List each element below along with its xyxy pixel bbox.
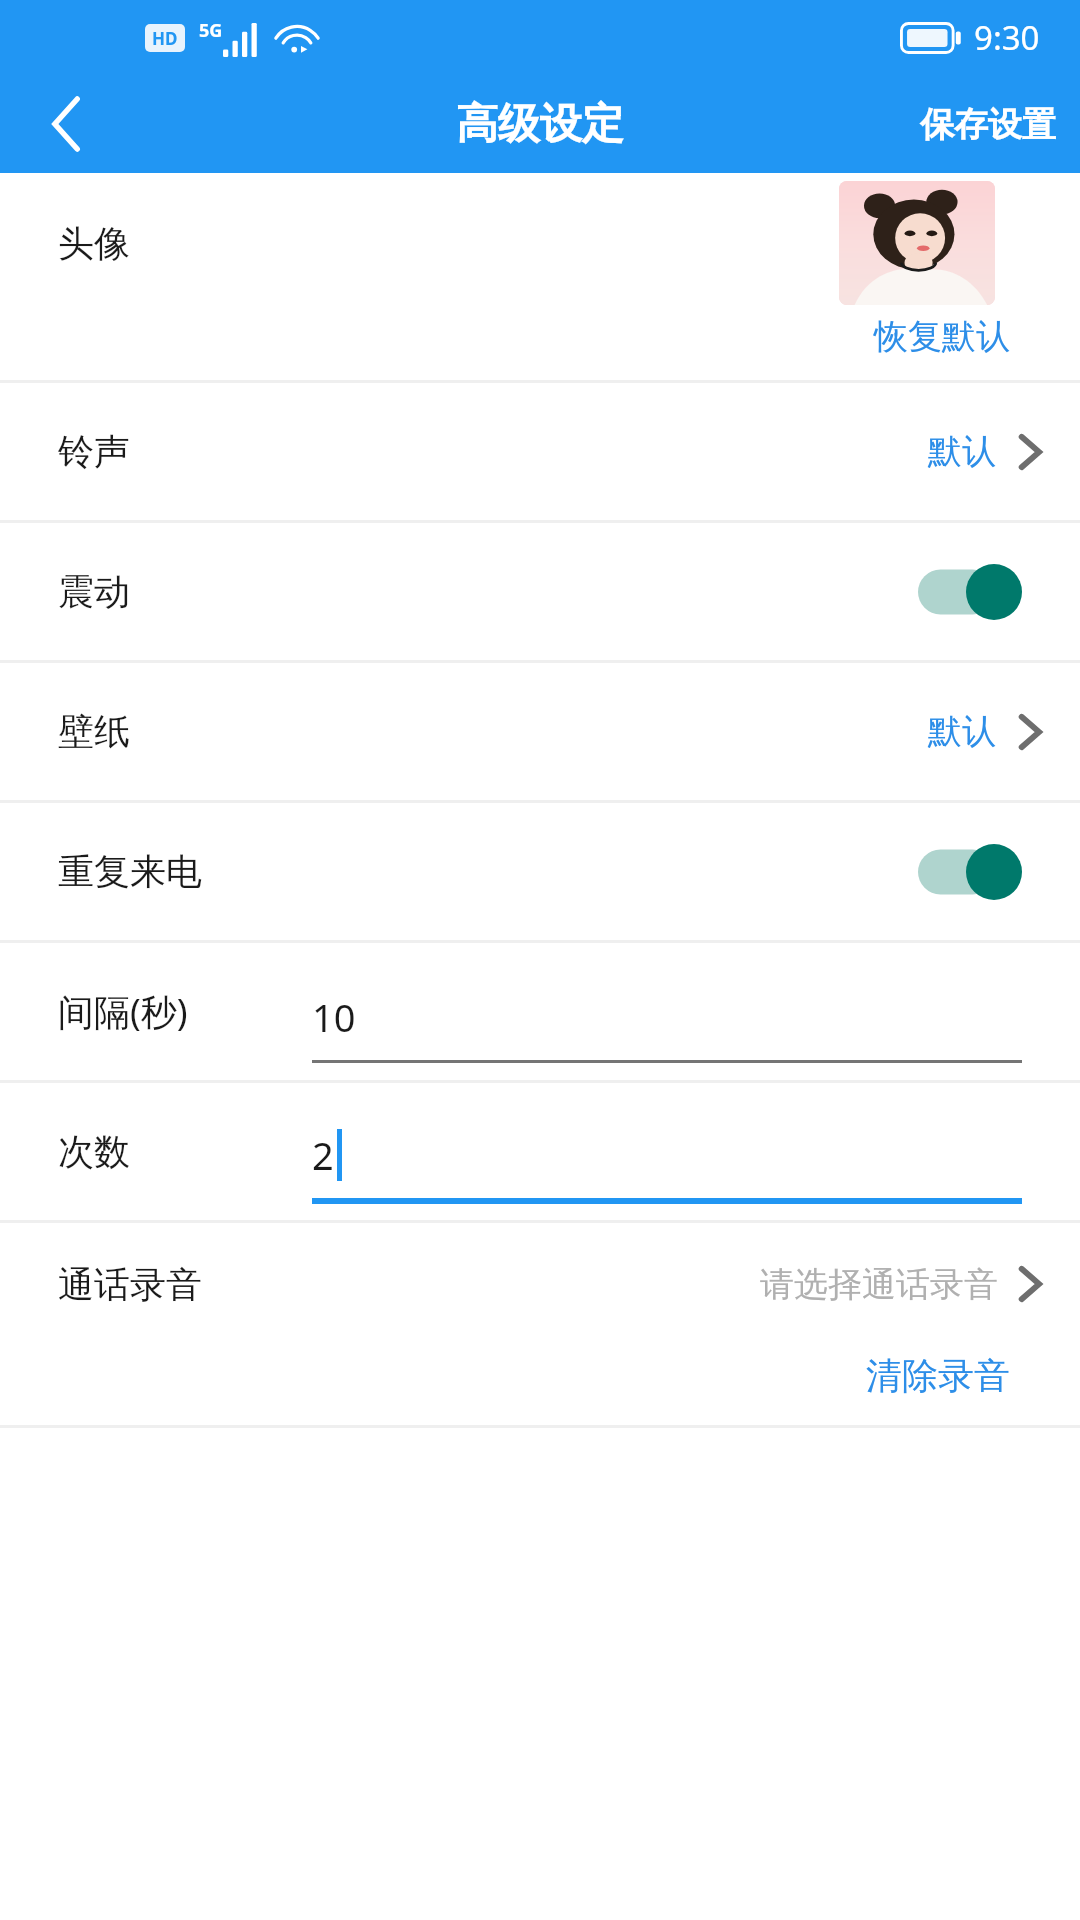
staticText: 恢复默认 <box>874 315 1010 358</box>
staticText: 请选择通话录音 <box>760 1263 998 1306</box>
button[interactable]: 2 <box>312 1099 1022 1204</box>
staticText: 次数 <box>58 1129 130 1174</box>
staticText: 震动 <box>58 569 130 614</box>
button[interactable]: 10 <box>312 961 1022 1063</box>
staticText: 间隔(秒) <box>58 987 188 1036</box>
staticText: 壁纸 <box>58 709 130 754</box>
staticText: 清除录音 <box>866 1353 1010 1398</box>
button[interactable]: 头像 <box>0 173 1080 313</box>
staticText: 10 <box>312 991 356 1043</box>
staticText: 重复来电 <box>58 849 202 894</box>
staticText: 默认 <box>928 710 996 753</box>
button[interactable]: 壁纸 <box>0 663 1080 800</box>
button[interactable]: Back <box>22 79 112 169</box>
button[interactable]: 保存设置 <box>896 87 1080 162</box>
button[interactable]: 重复来电 <box>908 830 1032 914</box>
staticText: HD <box>152 27 178 50</box>
button[interactable]: 震动 <box>908 550 1032 634</box>
button[interactable]: 恢复默认 <box>874 313 1080 368</box>
staticText: 保存设置 <box>920 103 1056 146</box>
staticText: 5G <box>199 18 223 43</box>
staticText: 高级设定 <box>456 98 624 151</box>
staticText: 2 <box>312 1129 334 1181</box>
staticText: 通话录音 <box>58 1262 202 1307</box>
button[interactable]: 清除录音 <box>866 1345 1080 1410</box>
staticText: 铃声 <box>58 429 130 474</box>
button[interactable]: 铃声 <box>0 383 1080 520</box>
staticText: 头像 <box>58 221 130 266</box>
button[interactable]: 通话录音 <box>0 1223 1080 1345</box>
staticText: 9:30 <box>974 15 1040 60</box>
staticText: 默认 <box>928 430 996 473</box>
